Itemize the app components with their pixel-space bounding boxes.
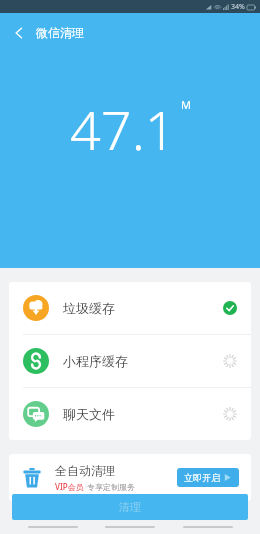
button[interactable]: 小程序缓存 bbox=[9, 335, 251, 387]
other: Back bbox=[12, 26, 26, 40]
staticText: 聊天文件 bbox=[63, 406, 115, 422]
button[interactable]: 垃圾缓存 bbox=[9, 282, 251, 334]
staticText: 47.1 bbox=[70, 92, 176, 166]
staticText: 全自动清理 bbox=[55, 463, 115, 478]
button[interactable]: 全自动清理 bbox=[9, 454, 251, 501]
staticText: 微信清理 bbox=[36, 25, 84, 40]
staticText: M bbox=[181, 97, 191, 112]
button[interactable]: 立即开启 bbox=[177, 468, 239, 487]
staticText: 垃圾缓存 bbox=[63, 300, 115, 316]
button[interactable]: 清理 bbox=[12, 494, 248, 520]
staticText: 清理 bbox=[119, 500, 141, 514]
button[interactable]: 聊天文件 bbox=[9, 388, 251, 440]
staticText: 专享定制服务 bbox=[87, 482, 135, 492]
staticText: 34% bbox=[231, 2, 245, 12]
button[interactable]: Back bbox=[8, 21, 88, 44]
staticText: 小程序缓存 bbox=[63, 353, 128, 369]
staticText: VIP会员 bbox=[55, 481, 84, 492]
staticText: 立即开启 bbox=[184, 472, 220, 483]
